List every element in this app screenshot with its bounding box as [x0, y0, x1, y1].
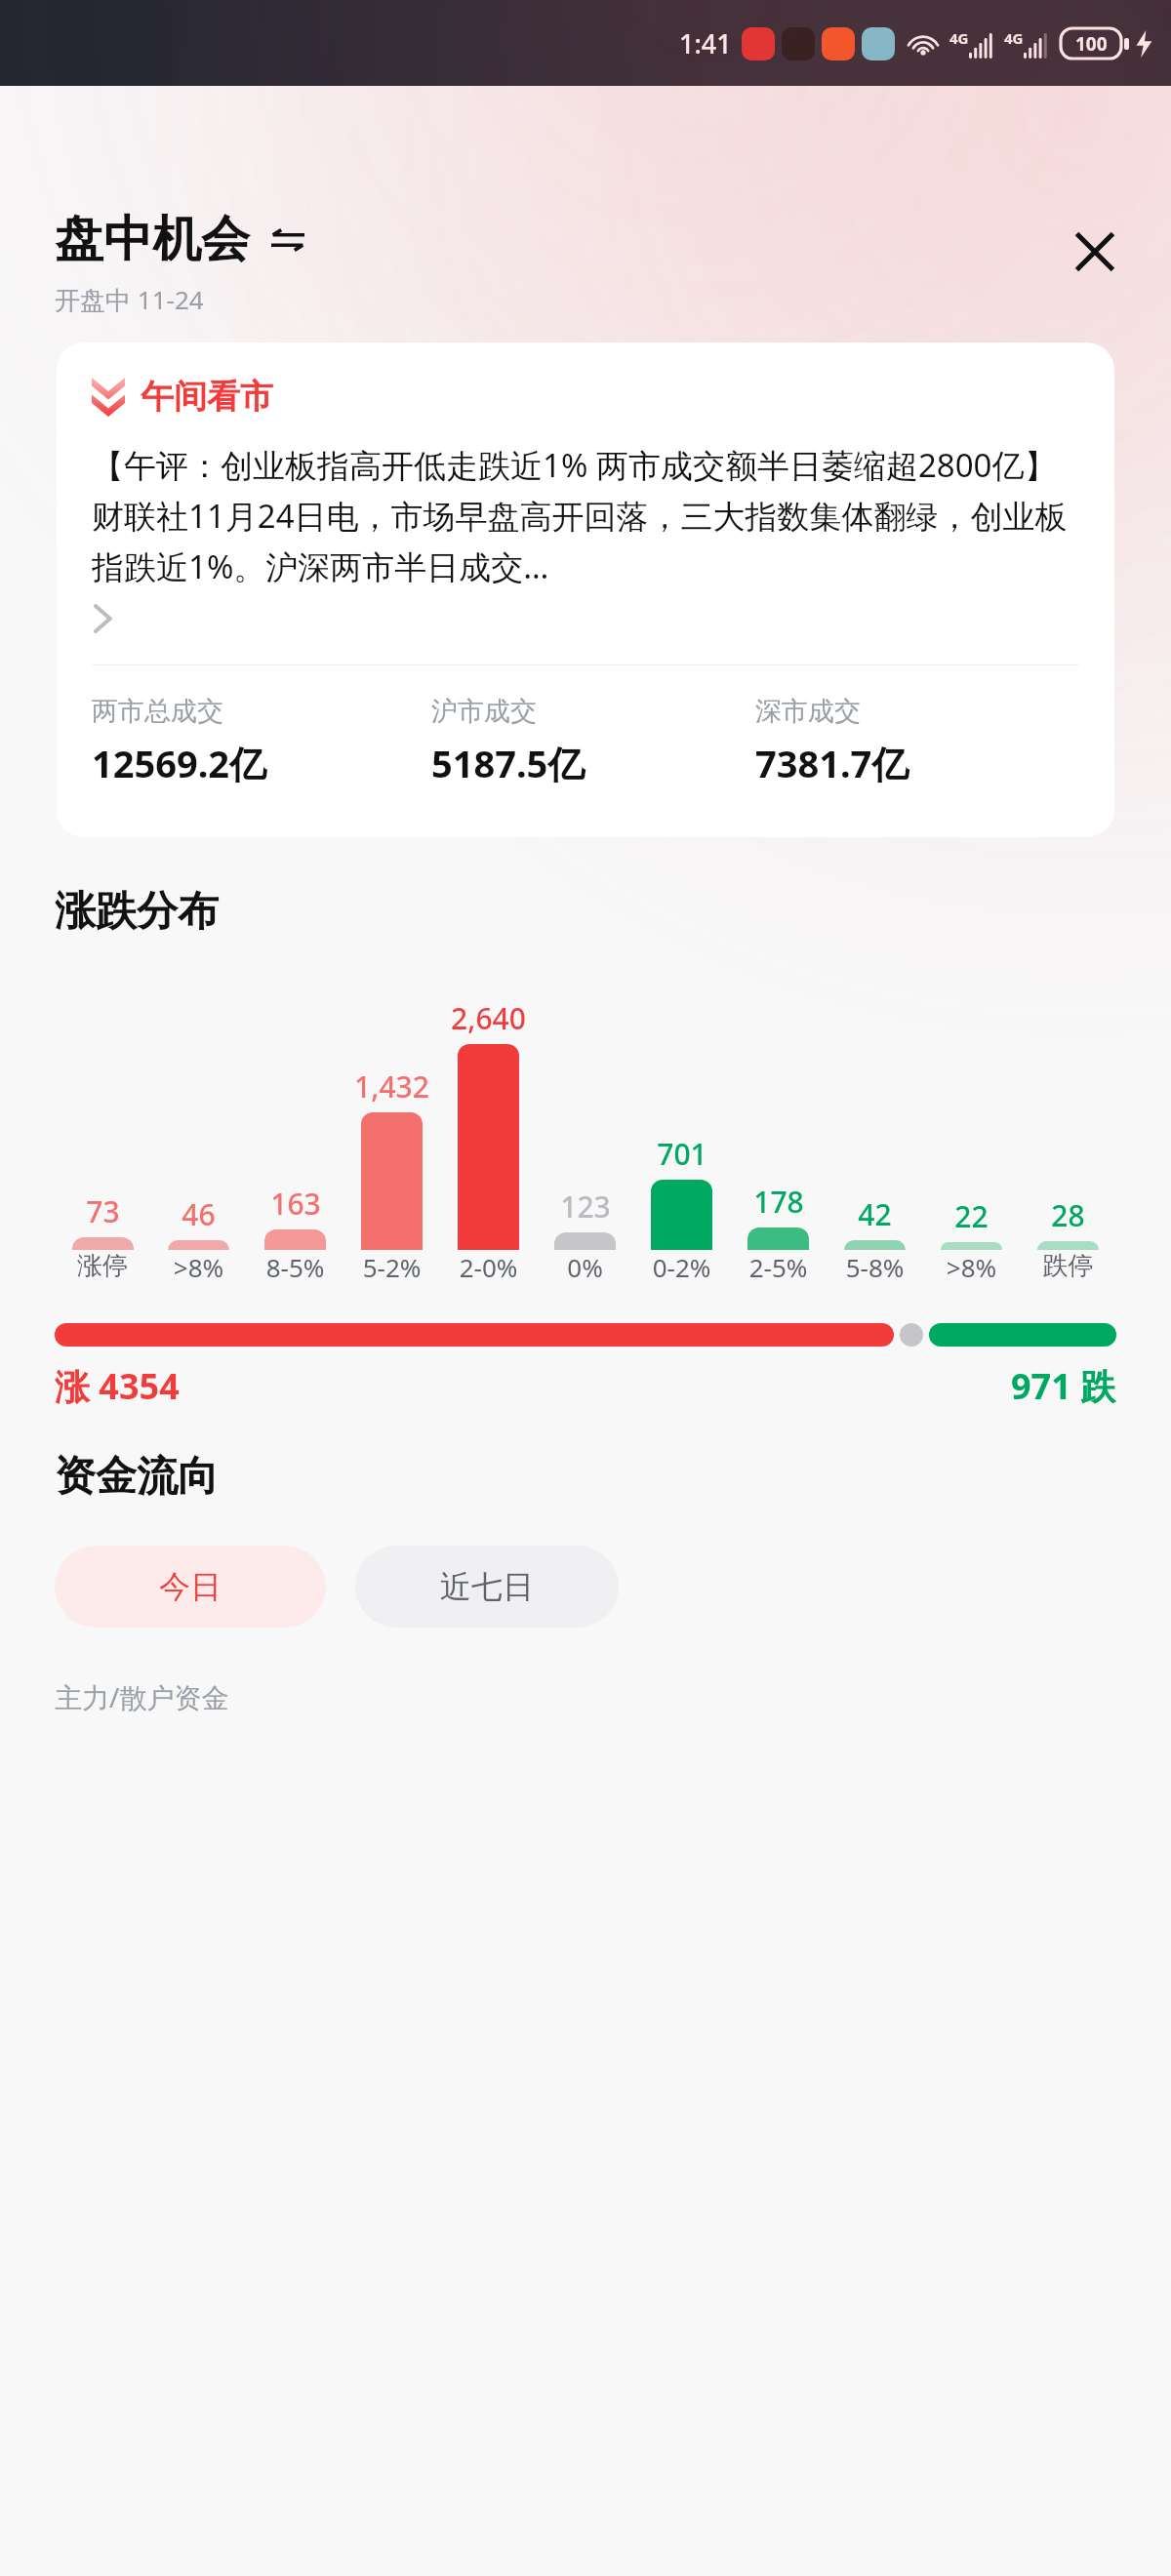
staticText: 午间看市 [141, 376, 273, 418]
staticText: 42 [858, 1194, 892, 1234]
staticText: 4G [949, 28, 969, 48]
staticText: 深市成交 [755, 695, 861, 728]
staticText: 46 [182, 1194, 216, 1234]
staticText: 701 [657, 1134, 707, 1174]
staticText: 跌停 [1020, 1250, 1116, 1282]
staticText: 73 [86, 1191, 120, 1231]
staticText: 0% [537, 1250, 633, 1284]
staticText: 163 [270, 1184, 321, 1224]
staticText: 28 [1051, 1195, 1085, 1235]
staticText: 0-2% [633, 1250, 730, 1284]
staticText: 971 跌 [1011, 1362, 1116, 1410]
staticText: 8-5% [247, 1250, 343, 1284]
staticText: >8% [923, 1250, 1020, 1284]
button[interactable]: 近七日 [355, 1546, 619, 1628]
button[interactable]: 今日 [55, 1546, 326, 1628]
staticText: 今日 [159, 1567, 222, 1606]
staticText: 【午评：创业板指高开低走跌近1% 两市成交额半日萎缩超2800亿】财联社11月2… [92, 443, 1079, 588]
staticText: 近七日 [440, 1567, 534, 1606]
staticText: 两市总成交 [92, 695, 223, 728]
staticText: 主力/散户资金 [55, 1678, 229, 1715]
staticText: 资金流向 [55, 1451, 219, 1503]
staticText: 沪市成交 [431, 695, 537, 728]
staticText: 22 [954, 1196, 989, 1236]
button[interactable]: 午间看市 [57, 342, 1114, 837]
staticText: 2-0% [440, 1250, 537, 1284]
staticText: 4G [1004, 28, 1024, 48]
staticText: 5-8% [827, 1250, 923, 1284]
staticText: 5187.5亿 [431, 738, 585, 788]
staticText: 1,432 [354, 1067, 429, 1107]
staticText: 7381.7亿 [755, 738, 909, 788]
staticText: >8% [150, 1250, 247, 1284]
staticText: 涨跌分布 [55, 886, 219, 938]
staticText: 涨停 [55, 1250, 150, 1282]
staticText: 1:41 [679, 25, 732, 61]
staticText: 涨 4354 [55, 1362, 180, 1410]
staticText: 2,640 [451, 998, 526, 1038]
staticText: 100 [1075, 31, 1108, 57]
staticText: 5-2% [343, 1250, 440, 1284]
staticText: 12569.2亿 [92, 738, 267, 788]
staticText: 178 [753, 1182, 804, 1222]
staticText: 盘中机会 [55, 209, 250, 270]
staticText: 2-5% [730, 1250, 827, 1284]
button[interactable]: 关闭 [1058, 215, 1132, 289]
staticText: 开盘中 11-24 [55, 282, 204, 317]
staticText: 123 [560, 1187, 611, 1227]
button[interactable]: 切换 [265, 218, 310, 262]
